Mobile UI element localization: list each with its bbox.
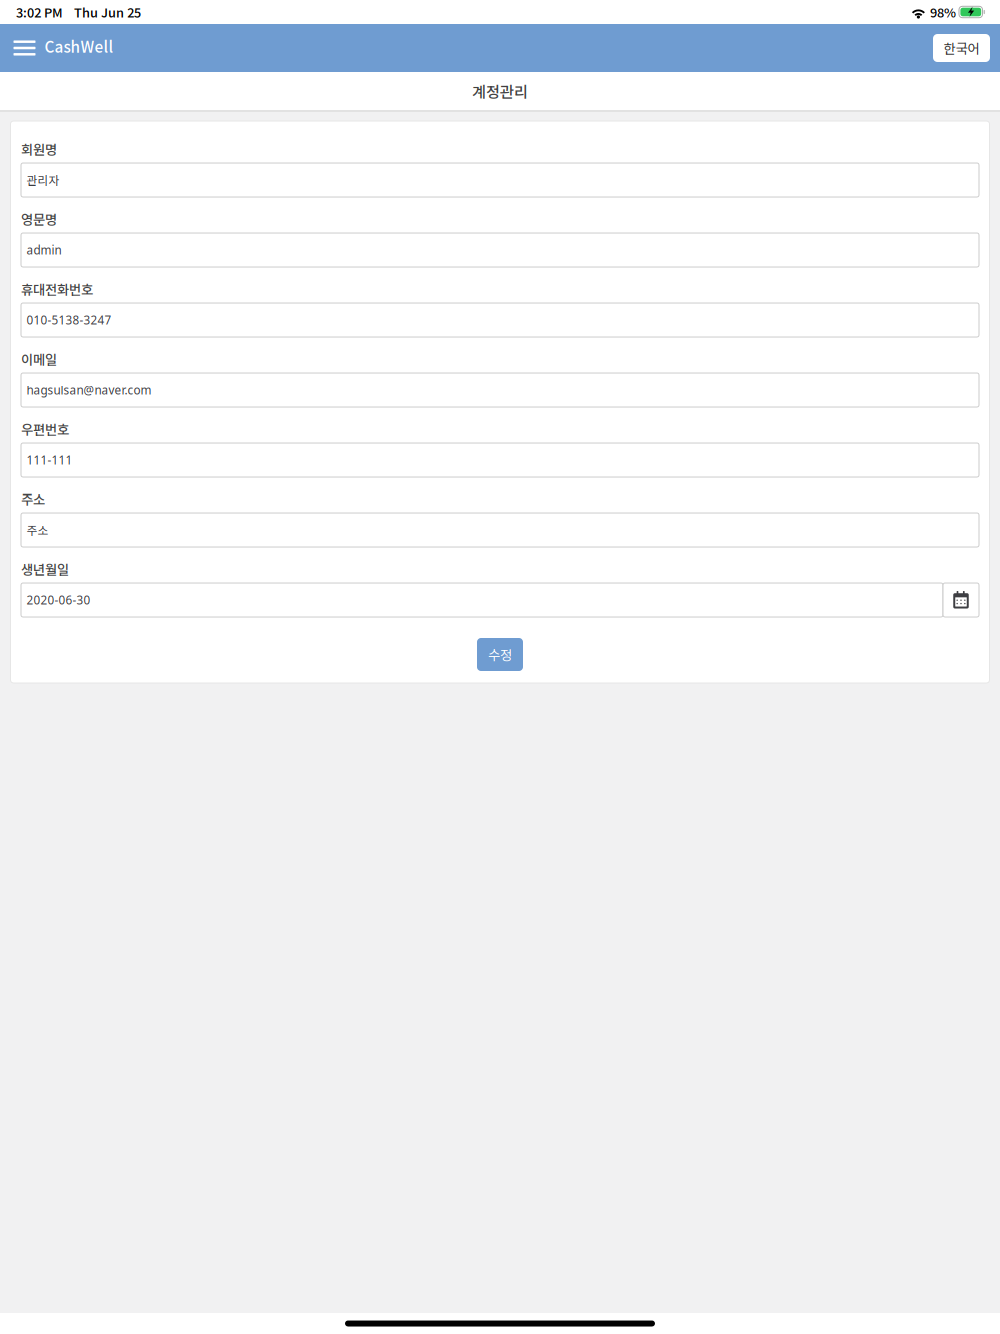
- button[interactable]: 수정: [477, 638, 523, 671]
- staticText: 3:02 PM: [16, 3, 63, 21]
- staticText: 주소: [26, 521, 48, 538]
- button[interactable]: 010-5138-3247: [21, 303, 979, 337]
- button[interactable]: 주소: [21, 513, 979, 547]
- staticText: 생년월일: [21, 559, 69, 579]
- staticText: 우편번호: [21, 419, 69, 439]
- button[interactable]: CashWell: [39, 24, 119, 72]
- button[interactable]: 111-111: [21, 443, 979, 477]
- staticText: 관리자: [26, 171, 59, 188]
- staticText: 111-111: [26, 452, 72, 468]
- staticText: Thu Jun 25: [74, 3, 141, 21]
- button[interactable]: Menu: [9, 24, 39, 72]
- staticText: 010-5138-3247: [26, 312, 111, 328]
- staticText: 휴대전화번호: [21, 279, 93, 299]
- staticText: hagsulsan@naver.com: [26, 382, 151, 398]
- staticText: 주소: [21, 489, 45, 509]
- staticText: 이메일: [21, 349, 57, 369]
- staticText: 수정: [488, 645, 512, 664]
- staticText: 회원명: [21, 139, 57, 159]
- button[interactable]: admin: [21, 233, 979, 267]
- staticText: 2020-06-30: [26, 592, 90, 608]
- button[interactable]: 2020-06-30: [21, 583, 943, 617]
- staticText: 98%: [930, 3, 956, 21]
- button[interactable]: 관리자: [21, 163, 979, 197]
- button[interactable]: Choose date: [943, 583, 979, 617]
- staticText: admin: [26, 242, 61, 258]
- staticText: CashWell: [44, 35, 113, 57]
- staticText: 영문명: [21, 209, 57, 229]
- staticText: 한국어: [943, 38, 979, 58]
- staticText: 계정관리: [472, 80, 528, 102]
- button[interactable]: 한국어: [933, 34, 990, 62]
- button[interactable]: hagsulsan@naver.com: [21, 373, 979, 407]
